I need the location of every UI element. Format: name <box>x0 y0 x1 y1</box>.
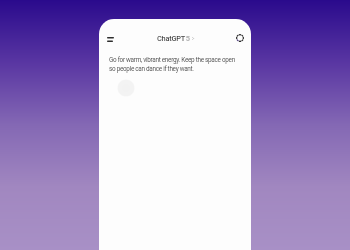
button[interactable]: ChatGPT 5 <box>157 34 194 43</box>
staticText: ChatGPT 5 <box>157 34 190 43</box>
staticText: Go for warm, vibrant energy. Keep the sp… <box>109 56 235 72</box>
button[interactable]: Temporary chat <box>232 30 248 46</box>
button[interactable]: Open sidebar <box>101 29 117 45</box>
